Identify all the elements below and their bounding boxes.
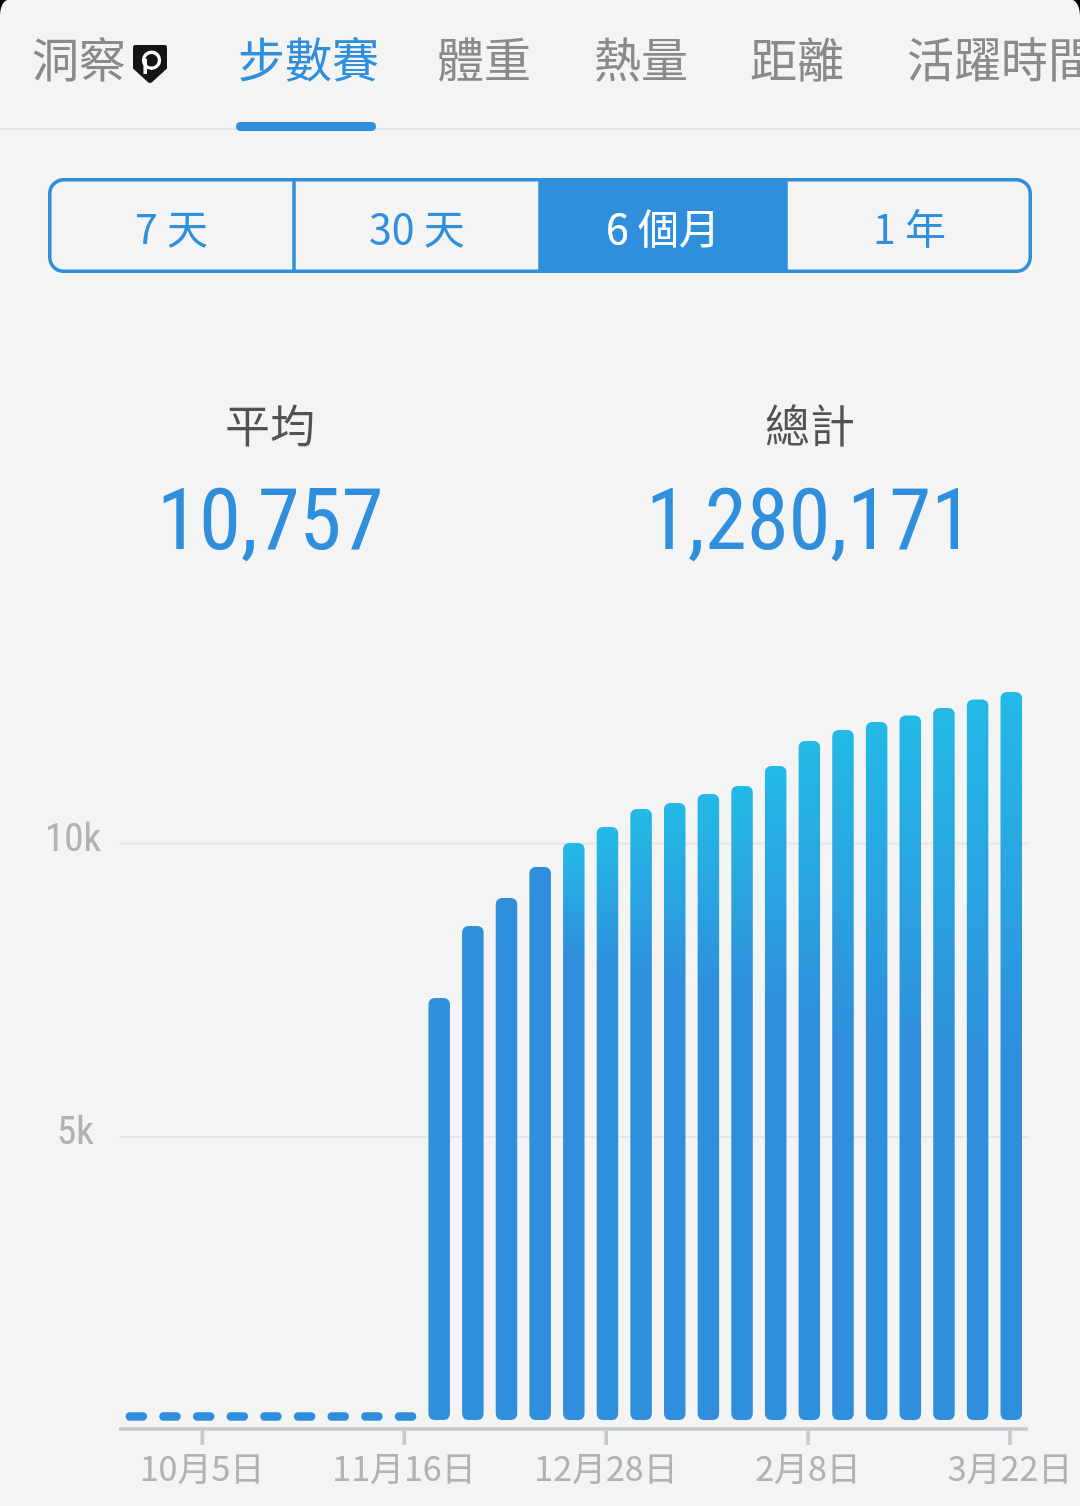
- button[interactable]: 熱量: [563, 0, 719, 119]
- staticText: 12月28日: [486, 1442, 726, 1491]
- staticText: 總計: [765, 391, 856, 456]
- button[interactable]: 6 個月: [540, 178, 786, 273]
- staticText: 10月5日: [82, 1442, 322, 1491]
- button[interactable]: 活躍時間: [876, 0, 1080, 119]
- button[interactable]: 洞察: [0, 0, 200, 119]
- staticText: 5k: [57, 1108, 94, 1154]
- staticText: 洞察: [32, 22, 126, 90]
- staticText: 11月16日: [284, 1442, 524, 1491]
- staticText: 10,757: [157, 470, 384, 570]
- staticText: 1 年: [873, 196, 946, 255]
- staticText: 體重: [437, 22, 531, 90]
- staticText: 平均: [225, 391, 316, 456]
- button[interactable]: 體重: [406, 0, 562, 119]
- staticText: 活躍時間: [907, 22, 1080, 90]
- staticText: 距離: [750, 22, 844, 90]
- staticText: 1,280,171: [646, 470, 974, 570]
- staticText: 熱量: [594, 22, 688, 90]
- button[interactable]: 30 天: [294, 178, 540, 273]
- staticText: 步數賽: [238, 22, 379, 90]
- staticText: 2月8日: [688, 1442, 928, 1491]
- button[interactable]: 7 天: [48, 178, 294, 273]
- other: Premium badge: [133, 45, 167, 83]
- staticText: 6 個月: [606, 196, 720, 255]
- button[interactable]: 步數賽: [207, 0, 410, 119]
- button[interactable]: 距離: [719, 0, 875, 119]
- staticText: 7 天: [135, 196, 208, 255]
- button[interactable]: 1 年: [786, 178, 1032, 273]
- staticText: 30 天: [369, 196, 465, 255]
- staticText: 3月22日: [890, 1442, 1080, 1491]
- staticText: 10k: [45, 815, 102, 861]
